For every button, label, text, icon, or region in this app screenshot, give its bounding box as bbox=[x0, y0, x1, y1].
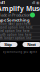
staticText: Skip bbox=[4, 42, 12, 47]
button[interactable]: Fourth option line here bbox=[0, 33, 40, 36]
button[interactable]: Skip bbox=[0, 42, 17, 47]
staticText: By continuing you agree bbox=[2, 50, 37, 54]
staticText: Option label goes here bbox=[0, 22, 31, 25]
staticText: Made in Production bbox=[0, 12, 30, 18]
staticText: Type Something bbox=[0, 17, 30, 23]
staticText: ıll ◉ ▮ bbox=[32, 0, 40, 5]
button[interactable]: Option label goes here bbox=[0, 22, 40, 26]
staticText: Fourth option line here bbox=[0, 33, 32, 36]
staticText: Second option line here bbox=[0, 26, 33, 29]
staticText: Third option line here bbox=[0, 29, 30, 33]
button[interactable]: Third option line here bbox=[0, 29, 40, 33]
staticText: Amplify Muse bbox=[0, 4, 40, 13]
button[interactable]: Second option line here bbox=[0, 26, 40, 29]
staticText: Next bbox=[27, 42, 36, 47]
staticText: 9:41 bbox=[0, 0, 5, 5]
button[interactable]: Fifth longer option line bbox=[0, 36, 40, 40]
button[interactable]: Next bbox=[22, 42, 40, 47]
staticText: Fifth longer option line bbox=[0, 36, 32, 40]
